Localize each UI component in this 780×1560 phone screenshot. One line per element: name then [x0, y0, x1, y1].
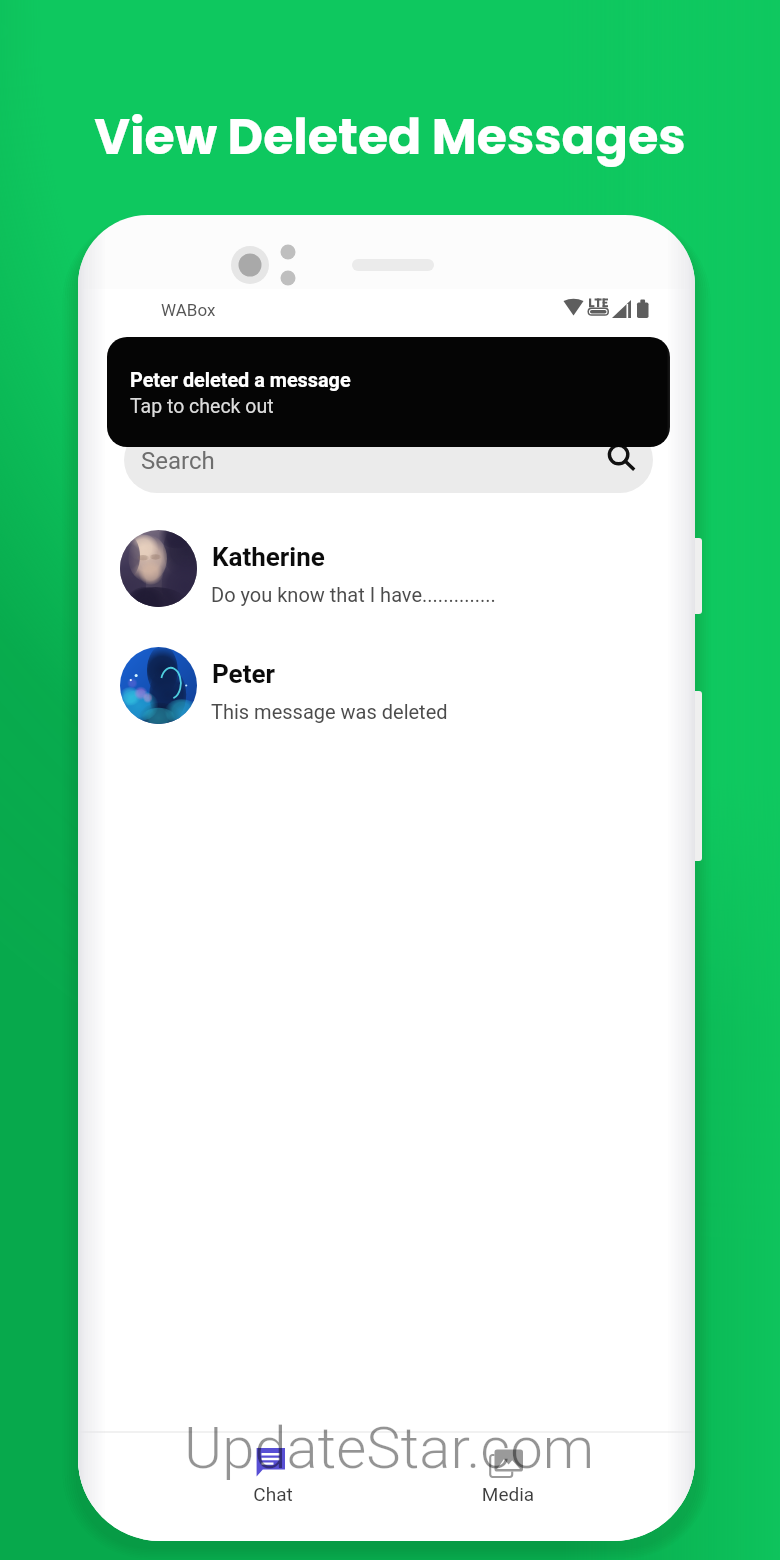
staticText: View Deleted Messages — [0, 103, 780, 172]
staticText: Chat — [216, 1483, 330, 1505]
button[interactable]: Katherine — [78, 509, 695, 626]
staticText: Search — [141, 447, 215, 475]
other: Media — [489, 1447, 525, 1481]
staticText: Tap to check out — [130, 395, 274, 418]
staticText: Media — [451, 1483, 565, 1505]
staticText: WABox — [161, 300, 216, 320]
button[interactable]: Media — [451, 1439, 565, 1511]
staticText: Peter — [212, 659, 276, 689]
staticText: This message was deleted — [211, 700, 448, 723]
staticText: UpdateStar.com — [184, 1414, 595, 1482]
button[interactable]: Chat — [216, 1439, 330, 1511]
button[interactable]: Peter — [78, 626, 695, 743]
button[interactable]: Peter deleted a message — [107, 337, 670, 447]
other: Search — [607, 441, 645, 479]
staticText: Peter deleted a message — [130, 369, 351, 392]
button[interactable]: Search — [124, 427, 653, 493]
staticText: Do you know that I have.............. — [211, 583, 496, 606]
other: Chat — [256, 1448, 286, 1478]
staticText: Katherine — [212, 542, 325, 572]
